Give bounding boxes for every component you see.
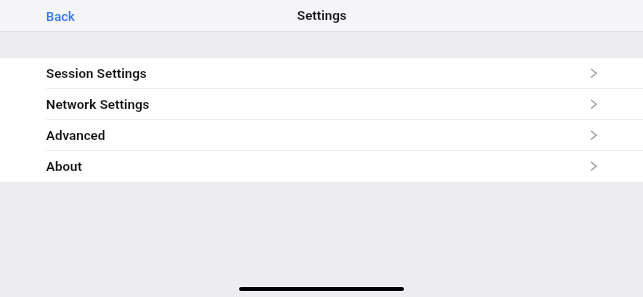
staticText: Session Settings	[46, 66, 147, 82]
button[interactable]: Network Settings	[0, 89, 643, 120]
staticText: Settings	[297, 8, 347, 24]
staticText: Advanced	[46, 128, 106, 144]
button[interactable]: Session Settings	[0, 58, 643, 89]
button[interactable]: Back	[40, 4, 81, 29]
staticText: About	[46, 159, 82, 175]
staticText: Network Settings	[46, 97, 150, 113]
button[interactable]: Advanced	[0, 120, 643, 151]
button[interactable]: About	[0, 151, 643, 182]
staticText: Back	[46, 9, 75, 24]
